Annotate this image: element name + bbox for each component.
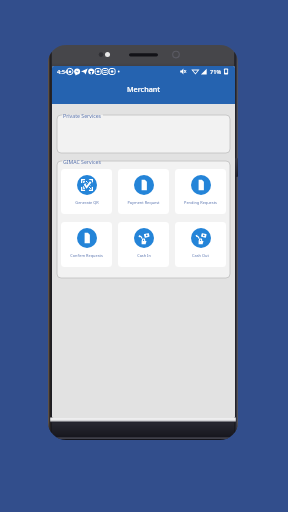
staticText: Generate QR [75,200,99,205]
staticText: Pending Requests [184,200,217,205]
staticText: Merchant [127,84,161,94]
button[interactable]: Pending Requests [175,169,226,214]
staticText: GIMAC Services [63,158,101,165]
button[interactable]: Cash In [118,222,169,267]
staticText: Cash Out [192,253,209,258]
staticText: Payment Request [127,200,160,205]
staticText: Private Services [63,112,102,119]
staticText: 4:54 [57,68,69,76]
button[interactable]: Cash Out [175,222,226,267]
button[interactable]: Payment Request [118,169,169,214]
staticText: Cash In [137,253,151,258]
staticText: 71% [210,68,222,76]
staticText: Confirm Requests [70,253,103,258]
button[interactable]: Generate QR [61,169,112,214]
button[interactable]: Confirm Requests [61,222,112,267]
